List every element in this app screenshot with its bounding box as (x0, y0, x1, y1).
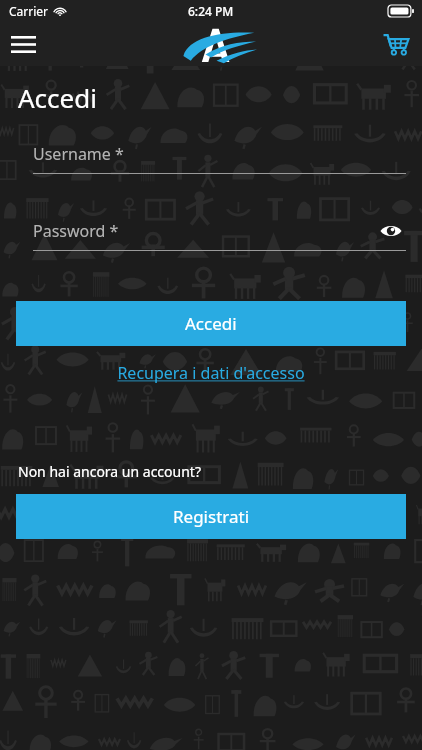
staticText: Non hai ancora un account? (18, 462, 201, 481)
button[interactable]: Registrati (16, 494, 406, 539)
staticText: Username * (33, 143, 124, 165)
button[interactable]: Username * (16, 142, 406, 166)
staticText: Accedi (18, 80, 97, 115)
button[interactable]: Recupera i dati d'accesso (117, 362, 305, 384)
staticText: 6:24 PM (188, 3, 234, 19)
staticText: Carrier (9, 3, 49, 19)
button[interactable]: Cart (370, 22, 422, 66)
button[interactable]: Password * (16, 219, 406, 243)
button[interactable]: Accedi (16, 301, 406, 346)
staticText: Registrati (173, 505, 250, 528)
staticText: Recupera i dati d'accesso (117, 362, 305, 384)
staticText: Password * (33, 220, 119, 242)
button[interactable]: Menu (0, 22, 46, 66)
button[interactable]: Logo (161, 22, 261, 66)
staticText: Accedi (185, 312, 237, 335)
button[interactable]: Show password (376, 219, 406, 243)
